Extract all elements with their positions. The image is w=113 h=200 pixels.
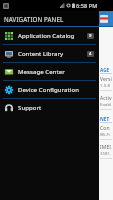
staticText: Activation xyxy=(100,95,112,102)
staticText: 1.0.8 xyxy=(100,83,110,89)
staticText: Message Center xyxy=(18,68,94,76)
button[interactable]: Activation xyxy=(100,93,112,112)
staticText: 9 xyxy=(89,33,92,39)
other: Device Configuration xyxy=(5,86,13,94)
staticText: 3581.. xyxy=(100,151,112,157)
button[interactable]: App icon xyxy=(100,15,108,23)
button[interactable]: Device Configuration xyxy=(0,81,99,98)
other: Support xyxy=(5,104,13,112)
button[interactable]: Version xyxy=(100,74,112,93)
staticText: Device Configuration xyxy=(18,86,94,94)
staticText: NETWORK xyxy=(100,116,112,122)
staticText: NAVIGATION PANEL xyxy=(4,15,64,23)
button[interactable]: Message Center xyxy=(0,63,99,80)
staticText: Version xyxy=(100,76,112,83)
other: Content Library xyxy=(5,50,13,58)
staticText: Content Library xyxy=(18,50,87,58)
staticText: Wi-Fi xyxy=(100,132,111,138)
staticText: Application Catalog xyxy=(18,32,87,40)
button[interactable]: Support xyxy=(0,99,99,116)
staticText: IMEI xyxy=(100,144,112,151)
button[interactable]: Connection xyxy=(100,123,112,142)
button[interactable]: Content Library xyxy=(0,45,99,62)
other: Message Center xyxy=(5,68,13,76)
staticText: 6:58 PM xyxy=(76,2,98,9)
staticText: AGENT xyxy=(100,67,112,73)
staticText: 4 xyxy=(89,51,92,57)
staticText: Support xyxy=(18,104,94,112)
staticText: Connection xyxy=(100,125,112,132)
button[interactable]: IMEI xyxy=(100,142,112,161)
other: Application Catalog xyxy=(5,32,13,40)
button[interactable]: Application Catalog xyxy=(0,27,99,44)
staticText: Enabled xyxy=(100,102,112,108)
